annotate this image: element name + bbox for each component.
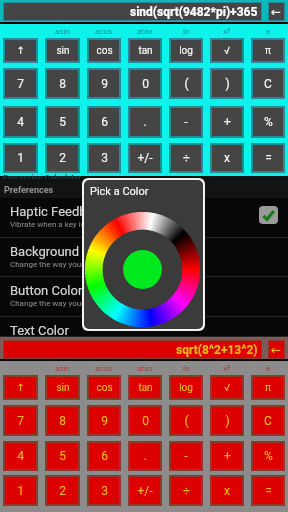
button[interactable]: tan [130,40,160,61]
button[interactable]: % [253,108,283,136]
button[interactable]: +/- [130,477,160,504]
button[interactable]: 2 [47,145,78,171]
button[interactable]: 3 [89,145,119,171]
staticText: acos [95,364,113,373]
button[interactable]: π [253,377,283,398]
staticText: Change the way your calculator looks [10,260,143,269]
staticText: xʸ [223,27,231,36]
button[interactable]: 5 [47,443,78,469]
staticText: 3 [101,151,108,165]
staticText: log [179,382,193,394]
button[interactable]: +/- [130,145,160,171]
button[interactable]: Backspace [269,3,284,20]
button[interactable]: 4 [5,443,36,469]
button[interactable]: 5 [47,108,78,136]
button[interactable]: C [253,70,283,97]
staticText: sin [56,45,70,57]
button[interactable]: 1 [5,145,36,171]
button[interactable]: 9 [89,70,119,97]
button[interactable]: C [253,407,283,434]
button[interactable]: 8 [47,407,78,434]
button[interactable]: 7 [5,70,36,97]
button[interactable]: - [171,108,201,136]
staticText: 3 [101,484,108,498]
button[interactable]: ↑ [5,377,36,398]
button[interactable]: % [253,443,283,469]
staticText: 5 [59,115,66,129]
button[interactable]: log [171,377,201,398]
button[interactable]: Pick a Color [84,180,203,329]
staticText: 6 [101,115,108,129]
button[interactable]: 2 [47,477,78,504]
staticText: log [179,45,193,57]
button[interactable]: + [212,108,242,136]
staticText: x [224,151,230,165]
button[interactable]: 7 [5,407,36,434]
button[interactable]: ) [212,407,242,434]
button[interactable]: sin [47,377,78,398]
staticText: xʸ [223,364,231,373]
button[interactable]: ÷ [171,477,201,504]
button[interactable]: π [253,40,283,61]
button[interactable]: ↑ [5,40,36,61]
button[interactable]: 8 [47,70,78,97]
staticText: C [264,414,272,428]
staticText: ( [184,77,189,91]
staticText: asin [55,27,70,36]
button[interactable]: = [253,477,283,504]
staticText: Expression Calculator [3,173,82,179]
button[interactable]: Haptic feedback toggle [259,206,278,224]
button[interactable]: x [212,477,242,504]
staticText: ) [225,414,230,428]
button[interactable]: 9 [89,407,119,434]
button[interactable]: 6 [89,108,119,136]
button[interactable]: ) [212,70,242,97]
button[interactable]: 3 [89,477,119,504]
button[interactable]: sqrt(8^2+13^2) [4,341,261,358]
button[interactable]: √ [212,377,242,398]
staticText: 9 [101,414,108,428]
staticText: sind(sqrt(9482*pi)+365 [130,5,258,19]
staticText: +/- [137,151,153,165]
staticText: ↑ [16,382,25,394]
button[interactable]: log [171,40,201,61]
staticText: cos [96,382,113,394]
button[interactable]: sin [47,40,78,61]
button[interactable]: Button Color [0,277,288,317]
staticText: + [224,115,231,129]
button[interactable]: . [130,443,160,469]
staticText: % [264,115,273,129]
button[interactable]: . [130,108,160,136]
button[interactable]: Text Color [0,317,288,337]
button[interactable]: Background Color [0,238,288,277]
staticText: % [264,449,273,463]
button[interactable]: cos [89,377,119,398]
staticText: 8 [59,77,66,91]
staticText: Preferences [4,185,54,196]
button[interactable]: - [171,443,201,469]
button[interactable]: ( [171,70,201,97]
button[interactable]: Backspace [269,341,284,358]
button[interactable]: Haptic Feedback [0,198,288,238]
staticText: - [184,115,188,129]
button[interactable]: 4 [5,108,36,136]
staticText: ↑ [16,45,25,57]
button[interactable]: √ [212,40,242,61]
button[interactable]: tan [130,377,160,398]
button[interactable]: 0 [130,407,160,434]
staticText: Button Color [10,283,83,298]
staticText: 7 [17,77,24,91]
button[interactable]: 0 [130,70,160,97]
button[interactable]: sind(sqrt(9482*pi)+365 [4,3,261,20]
button[interactable]: + [212,443,242,469]
button[interactable]: 6 [89,443,119,469]
staticText: 0 [142,414,149,428]
button[interactable]: ÷ [171,145,201,171]
button[interactable]: = [253,145,283,171]
button[interactable]: 1 [5,477,36,504]
staticText: 7 [17,414,24,428]
staticText: tan [138,382,153,394]
button[interactable]: ( [171,407,201,434]
button[interactable]: cos [89,40,119,61]
button[interactable]: x [212,145,242,171]
